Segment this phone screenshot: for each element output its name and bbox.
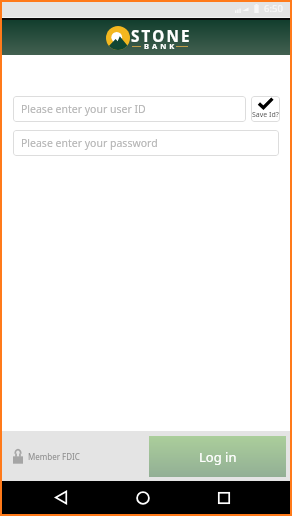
button[interactable]: Log in (149, 436, 286, 477)
staticText: BANK (144, 41, 178, 51)
staticText: Member FDIC (28, 451, 80, 462)
staticText: 6:50 (264, 2, 283, 15)
button[interactable]: Home (125, 480, 161, 515)
staticText: Please enter your user ID (21, 102, 146, 116)
button[interactable]: Please enter your password (13, 130, 279, 156)
staticText: Save Id? (252, 110, 279, 120)
button[interactable]: Recents (206, 480, 242, 515)
staticText: STONE (131, 26, 192, 47)
staticText: Log in (199, 448, 237, 466)
staticText: Please enter your password (21, 136, 158, 150)
button[interactable]: Save Id (251, 96, 280, 122)
button[interactable]: Back (43, 480, 79, 515)
button[interactable]: Please enter your user ID (13, 96, 246, 122)
